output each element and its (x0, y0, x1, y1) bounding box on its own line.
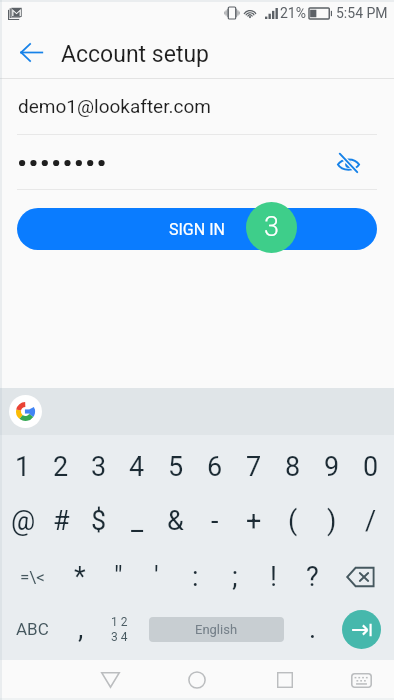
staticText: # (53, 505, 70, 537)
staticText: 3 4 (111, 630, 128, 644)
button[interactable]: ? (293, 549, 332, 605)
button[interactable]: ; (215, 549, 254, 605)
button[interactable]: # (42, 493, 80, 548)
button[interactable]: * (61, 549, 99, 605)
staticText: 3 (91, 451, 107, 483)
button[interactable]: ) (312, 493, 351, 548)
staticText: English (195, 622, 238, 637)
button[interactable]: 8 (273, 438, 312, 496)
button[interactable]: _ (118, 493, 156, 548)
button[interactable]: Enter (342, 610, 381, 649)
button[interactable]: 7 (234, 438, 273, 496)
staticText: =\< (20, 567, 45, 587)
button[interactable]: & (156, 493, 195, 548)
staticText: . (309, 613, 317, 645)
staticText: / (365, 505, 377, 537)
staticText: 8 (285, 451, 301, 483)
staticText: ) (327, 505, 337, 537)
staticText: $ (91, 505, 107, 537)
button[interactable]: Back (7, 28, 55, 76)
staticText: - (211, 505, 219, 537)
button[interactable]: $ (80, 493, 118, 548)
button[interactable]: Home (173, 660, 221, 700)
button[interactable]: - (195, 493, 234, 548)
button[interactable]: English (149, 617, 284, 642)
button[interactable]: =\< (4, 549, 61, 605)
staticText: ? (306, 561, 319, 593)
button[interactable]: ' (137, 549, 176, 605)
staticText: ' (154, 561, 159, 593)
staticText: 6 (207, 451, 223, 483)
button[interactable]: Recent apps (261, 660, 309, 700)
button[interactable]: 3 (80, 438, 118, 496)
button[interactable]: 1 (4, 438, 42, 496)
staticText: 4 (129, 451, 145, 483)
button[interactable]: , (61, 601, 100, 657)
button[interactable]: Google search (9, 395, 42, 428)
button[interactable]: Enter (332, 601, 390, 657)
staticText: 21% (280, 5, 306, 21)
button[interactable]: ! (254, 549, 293, 605)
button[interactable]: Switch keyboard (337, 660, 385, 700)
button[interactable]: + (234, 493, 273, 548)
button[interactable]: " (99, 549, 137, 605)
staticText: ! (270, 561, 277, 593)
staticText: demo1@lookafter.com (18, 95, 211, 117)
button[interactable]: ABC (4, 601, 61, 657)
button[interactable]: 0 (351, 438, 390, 496)
button[interactable]: Backspace (332, 549, 390, 605)
staticText: 5 (168, 451, 184, 483)
button[interactable]: 9 (312, 438, 351, 496)
button[interactable]: / (351, 493, 390, 548)
staticText: 9 (324, 451, 340, 483)
staticText: 7 (246, 451, 262, 483)
button[interactable]: 4 (118, 438, 156, 496)
staticText: & (167, 505, 184, 537)
button[interactable]: : (176, 549, 215, 605)
staticText: 1 (15, 451, 31, 483)
button[interactable]: Back (86, 660, 134, 700)
button[interactable]: 5 (156, 438, 195, 496)
staticText: : (192, 561, 199, 593)
button[interactable]: 2 (42, 438, 80, 496)
staticText: * (74, 561, 86, 593)
staticText: SIGN IN (169, 220, 225, 239)
staticText: ABC (16, 619, 49, 639)
staticText: " (114, 561, 123, 593)
button[interactable]: SIGN IN (17, 208, 377, 250)
staticText: 1 2 (111, 615, 128, 629)
staticText: 0 (363, 451, 379, 483)
button[interactable]: 1 2 (100, 601, 139, 657)
staticText: + (246, 505, 262, 537)
button[interactable]: ( (273, 493, 312, 548)
staticText: 2 (53, 451, 69, 483)
button[interactable]: . (293, 601, 332, 657)
button[interactable]: Show password (331, 145, 365, 179)
other: Backspace (346, 566, 376, 588)
staticText: , (78, 613, 84, 645)
button[interactable]: 6 (195, 438, 234, 496)
staticText: Account setup (61, 41, 209, 68)
staticText: ; (232, 561, 238, 593)
staticText: 3 (264, 211, 279, 243)
staticText: _ (131, 505, 144, 537)
staticText: ( (288, 505, 298, 537)
button[interactable]: @ (4, 493, 42, 548)
staticText: @ (11, 505, 36, 537)
staticText: 5:54 PM (336, 5, 388, 21)
